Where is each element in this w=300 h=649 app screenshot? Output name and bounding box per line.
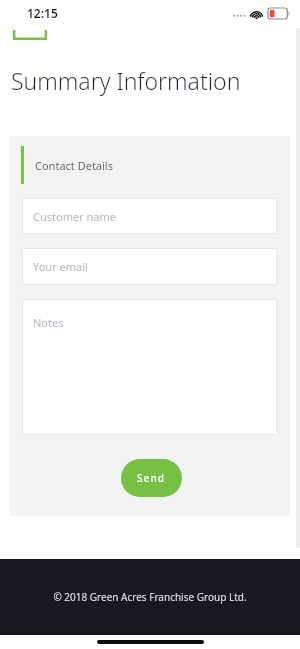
staticText: © 2018 Green Acres Franchise Group Ltd. (53, 590, 247, 604)
button[interactable]: Menu (13, 30, 47, 40)
staticText: Customer name (33, 209, 116, 224)
staticText: Notes (33, 315, 64, 330)
staticText: Your email (33, 259, 88, 274)
button[interactable]: Your email (22, 248, 277, 285)
button[interactable]: Customer name (22, 198, 277, 234)
button[interactable]: Send (121, 459, 182, 497)
button[interactable]: Contact Details (21, 146, 113, 184)
staticText: Summary Information (11, 65, 241, 96)
button[interactable]: Notes (22, 299, 277, 435)
staticText: 12:15 (27, 5, 58, 21)
staticText: Contact Details (35, 158, 113, 173)
staticText: Send (137, 471, 166, 485)
